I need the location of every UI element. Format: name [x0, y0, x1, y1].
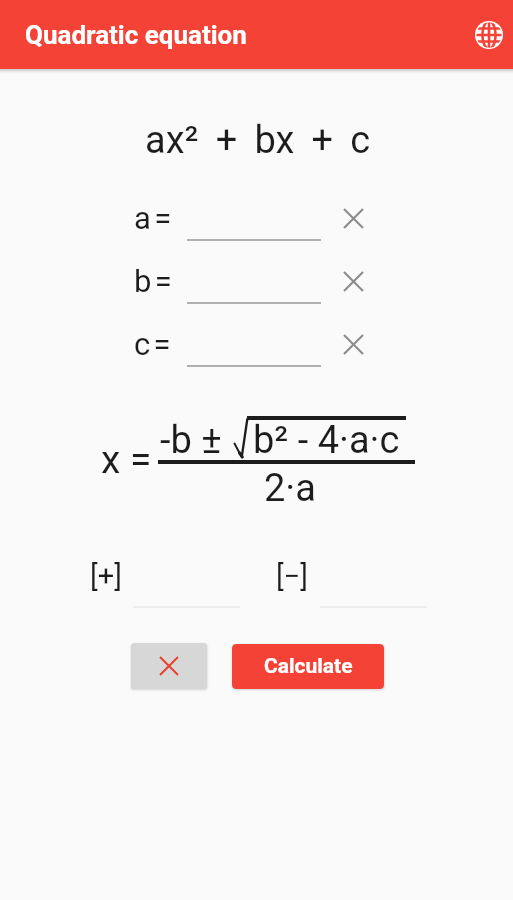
staticText: 2·a: [264, 466, 316, 511]
staticText: b² - 4·a·c: [253, 418, 400, 463]
button[interactable]: Clear field a =: [335, 200, 371, 236]
button[interactable]: Calculate: [232, 644, 384, 689]
staticText: [+]: [90, 559, 122, 593]
button[interactable]: Clear field c =: [335, 326, 371, 362]
staticText: a =: [134, 200, 169, 236]
staticText: x =: [101, 437, 152, 483]
staticText: b =: [134, 263, 170, 299]
button[interactable]: Clear all: [131, 643, 207, 689]
button[interactable]: Coefficient a = input: [187, 203, 321, 241]
staticText: Calculate: [264, 654, 353, 679]
staticText: Quadratic equation: [25, 20, 247, 50]
staticText: -b ±: [160, 418, 222, 463]
button[interactable]: Coefficient c = input: [187, 329, 321, 367]
button[interactable]: Coefficient b = input: [187, 266, 321, 304]
staticText: [−]: [276, 559, 308, 593]
button[interactable]: Change language: [465, 11, 513, 59]
staticText: ax² + bx + c: [145, 118, 371, 163]
button[interactable]: Clear field b =: [335, 263, 371, 299]
staticText: c =: [134, 326, 169, 362]
